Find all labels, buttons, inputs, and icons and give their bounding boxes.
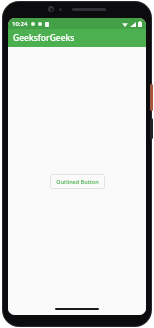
staticText: 10:24	[12, 20, 28, 28]
staticText: GeeksforGeeks	[13, 32, 75, 44]
staticText: Outlined Button	[56, 178, 99, 185]
button[interactable]: Outlined Button	[50, 174, 105, 189]
